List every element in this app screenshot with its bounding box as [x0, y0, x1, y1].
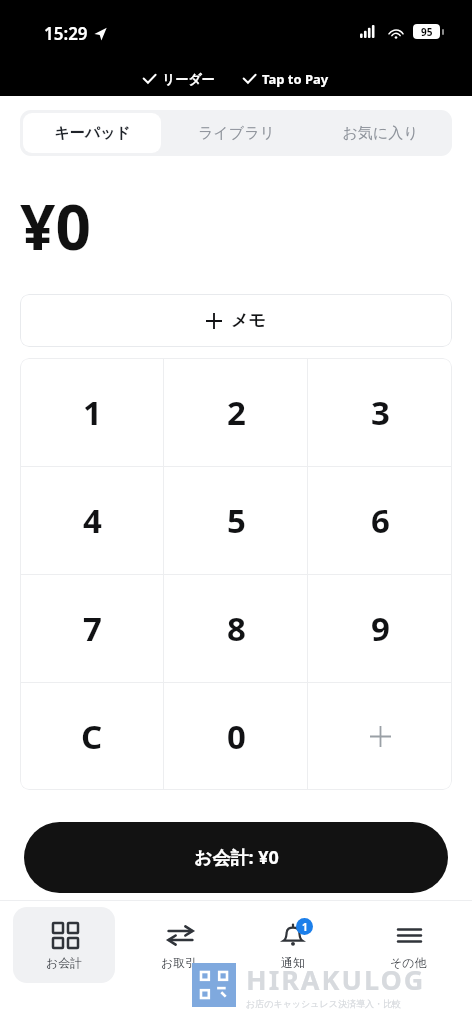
button[interactable]: お会計 — [13, 907, 115, 983]
staticText: 通知 — [281, 955, 305, 970]
staticText: 3 — [371, 390, 390, 435]
button[interactable]: 3 — [308, 358, 452, 466]
button[interactable]: 6 — [308, 467, 452, 574]
staticText: お取引 — [161, 955, 198, 970]
staticText: 95 — [421, 25, 433, 39]
button[interactable]: ライブラリ — [167, 113, 305, 153]
staticText: 0 — [227, 714, 246, 759]
staticText: 8 — [227, 606, 246, 651]
staticText: HIRAKULOG — [246, 961, 426, 998]
button[interactable]: 4 — [20, 467, 164, 574]
button[interactable]: 1 — [20, 358, 164, 466]
staticText: キーパッド — [54, 124, 131, 143]
button[interactable]: 7 — [20, 575, 164, 682]
button[interactable]: 5 — [164, 467, 308, 574]
staticText: 6 — [371, 498, 390, 543]
button[interactable]: 1 — [242, 907, 344, 983]
staticText: 7 — [83, 606, 102, 651]
staticText: C — [81, 714, 103, 759]
staticText: 2 — [227, 390, 246, 435]
button[interactable]: 9 — [308, 575, 452, 682]
button[interactable]: C — [20, 683, 164, 790]
button[interactable]: 8 — [164, 575, 308, 682]
staticText: ¥0 — [20, 184, 91, 268]
button[interactable]: お会計: ¥0 — [24, 822, 448, 893]
staticText: お会計 — [46, 955, 83, 970]
button[interactable]: 2 — [164, 358, 308, 466]
staticText: お会計: ¥0 — [194, 845, 279, 870]
staticText: お気に入り — [342, 124, 419, 143]
staticText: その他 — [390, 955, 427, 970]
staticText: 15:29 — [44, 22, 88, 45]
button[interactable]: お取引 — [128, 907, 230, 983]
button[interactable] — [308, 683, 452, 790]
staticText: 9 — [371, 606, 390, 651]
staticText: リーダー — [162, 71, 215, 87]
button[interactable]: その他 — [357, 907, 459, 983]
staticText: 1 — [302, 920, 308, 934]
staticText: メモ — [231, 310, 266, 331]
button[interactable]: 0 — [164, 683, 308, 790]
staticText: ライブラリ — [198, 124, 275, 143]
staticText: Tap to Pay — [262, 70, 329, 88]
button[interactable]: メモ — [20, 294, 452, 347]
staticText: 1 — [83, 390, 102, 435]
staticText: 4 — [83, 498, 102, 543]
button[interactable]: お気に入り — [311, 113, 449, 153]
button[interactable]: キーパッド — [23, 113, 161, 153]
staticText: 5 — [227, 498, 246, 543]
staticText: お店のキャッシュレス決済導入・比較 — [246, 998, 401, 1009]
